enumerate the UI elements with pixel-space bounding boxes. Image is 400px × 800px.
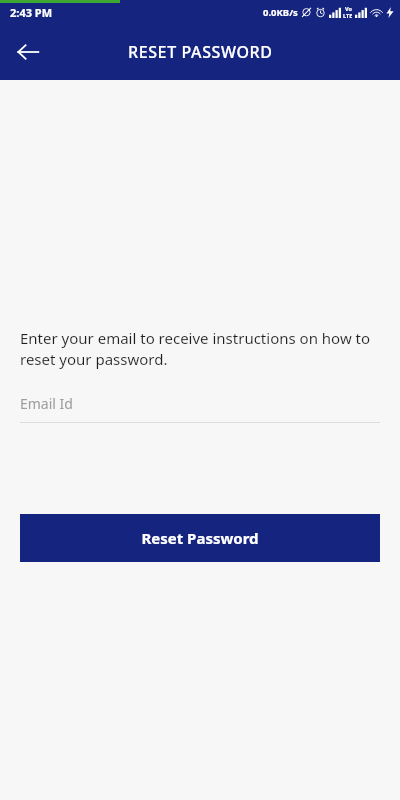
staticText: 0.0KB/s	[263, 6, 298, 19]
staticText: Email Id	[20, 394, 73, 413]
staticText: RESET PASSWORD	[128, 41, 273, 63]
button[interactable]: Reset Password	[20, 514, 380, 562]
button[interactable]: Email Id	[20, 394, 380, 423]
button[interactable]: Back	[6, 30, 50, 74]
staticText: 2:43 PM	[10, 5, 53, 20]
staticText: Enter your email to receive instructions…	[20, 328, 380, 370]
staticText: Vo	[345, 5, 352, 12]
staticText: LTE	[343, 12, 353, 19]
staticText: Reset Password	[141, 528, 259, 548]
